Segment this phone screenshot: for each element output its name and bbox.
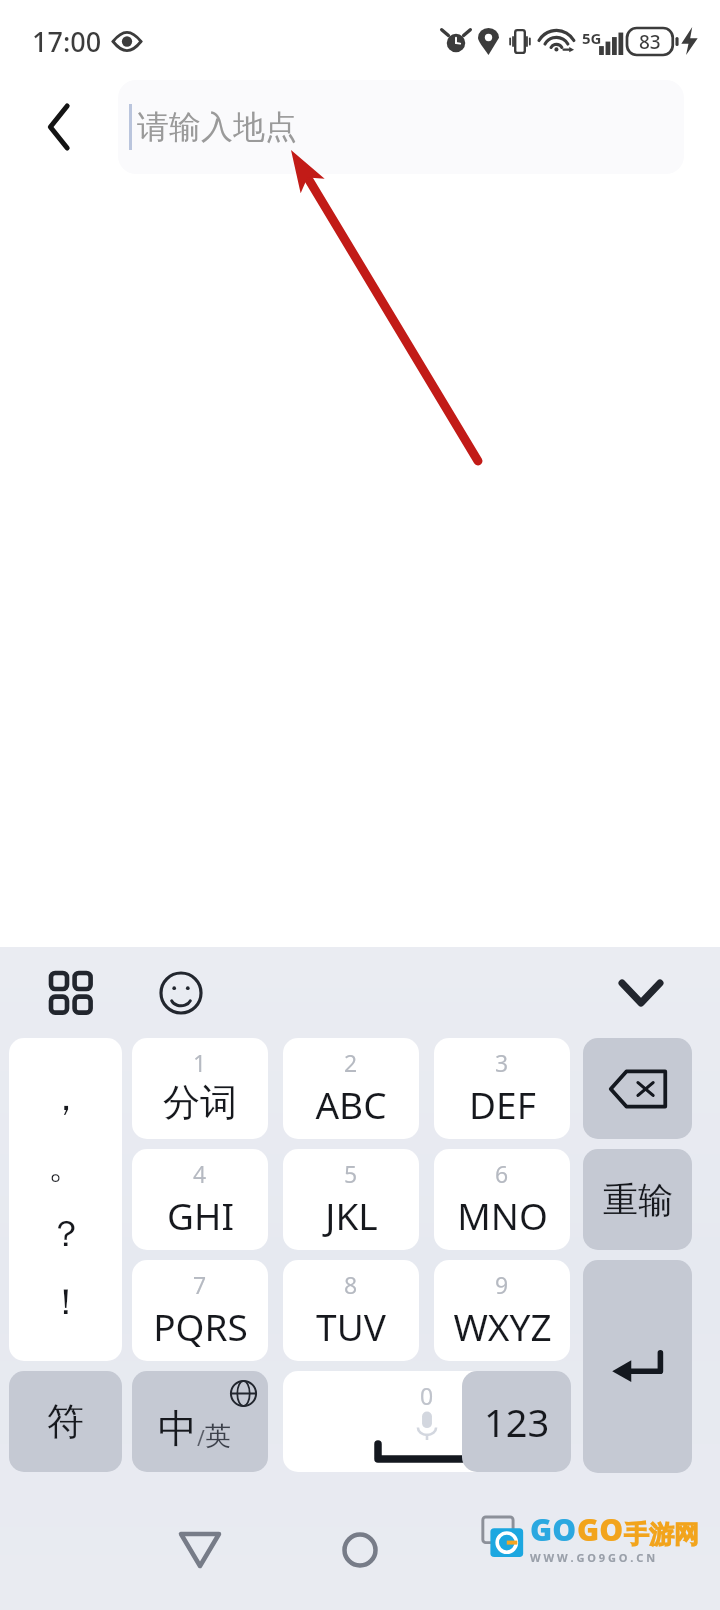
button[interactable]: 符 [9,1371,122,1472]
staticText: 0 [420,1380,434,1411]
button[interactable]: Switch language [132,1371,268,1472]
button[interactable]: 5 [283,1149,419,1250]
staticText: 重输 [603,1178,673,1222]
button[interactable]: 1 [132,1038,268,1139]
button[interactable]: Enter [583,1260,692,1473]
staticText: 符 [47,1398,84,1445]
staticText: 手游网 [624,1519,699,1550]
button[interactable]: 123 [462,1371,571,1472]
button[interactable]: 请输入地点 [118,80,684,174]
staticText: 3 [495,1047,509,1078]
button[interactable]: Emoji [140,947,222,1038]
staticText: DEF [469,1079,536,1129]
button[interactable]: Home [310,1490,410,1610]
staticText: 。 [48,1143,84,1188]
staticText: ？ [48,1211,84,1256]
button[interactable]: 8 [283,1260,419,1361]
staticText: ， [48,1075,84,1120]
button[interactable]: 2 [283,1038,419,1139]
staticText: 5G [582,28,602,48]
button[interactable]: 6 [434,1149,570,1250]
button[interactable]: 4 [132,1149,268,1250]
staticText: 中 [158,1404,197,1453]
button[interactable]: ， [9,1038,122,1361]
staticText: 2 [344,1047,358,1078]
staticText: 123 [484,1396,550,1448]
button[interactable]: 7 [132,1260,268,1361]
staticText: GO [577,1509,624,1550]
staticText: / [197,1424,205,1453]
staticText: PQRS [153,1301,248,1351]
staticText: 9 [495,1269,509,1300]
staticText: WXYZ [453,1301,552,1351]
staticText: ABC [315,1079,387,1129]
staticText: 83 [639,29,661,55]
staticText: MNO [457,1190,548,1240]
staticText: JKL [325,1190,378,1240]
staticText: 17:00 [32,23,102,60]
staticText: ！ [48,1279,84,1324]
staticText: 分词 [163,1079,237,1126]
button[interactable]: Space [283,1371,570,1472]
staticText: GO [530,1509,577,1550]
button[interactable]: Keyboard layouts [30,947,112,1038]
button[interactable]: Hide keyboard [604,956,678,1030]
staticText: 6 [495,1158,509,1189]
staticText: 请输入地点 [137,107,297,147]
staticText: TUV [316,1301,386,1351]
staticText: 5 [344,1158,358,1189]
staticText: GHI [167,1190,234,1240]
staticText: 4 [193,1158,207,1189]
button[interactable]: 9 [434,1260,570,1361]
staticText: 8 [344,1269,358,1300]
staticText: 1 [193,1047,207,1078]
button[interactable]: Backspace [583,1038,692,1139]
button[interactable]: 3 [434,1038,570,1139]
staticText: 英 [205,1420,231,1453]
button[interactable]: Back [0,72,118,182]
button[interactable]: Back [150,1490,250,1610]
staticText: W W W . G O 9 G O . C N [530,1550,656,1565]
staticText: 7 [193,1269,207,1300]
button[interactable]: 重输 [583,1149,692,1250]
